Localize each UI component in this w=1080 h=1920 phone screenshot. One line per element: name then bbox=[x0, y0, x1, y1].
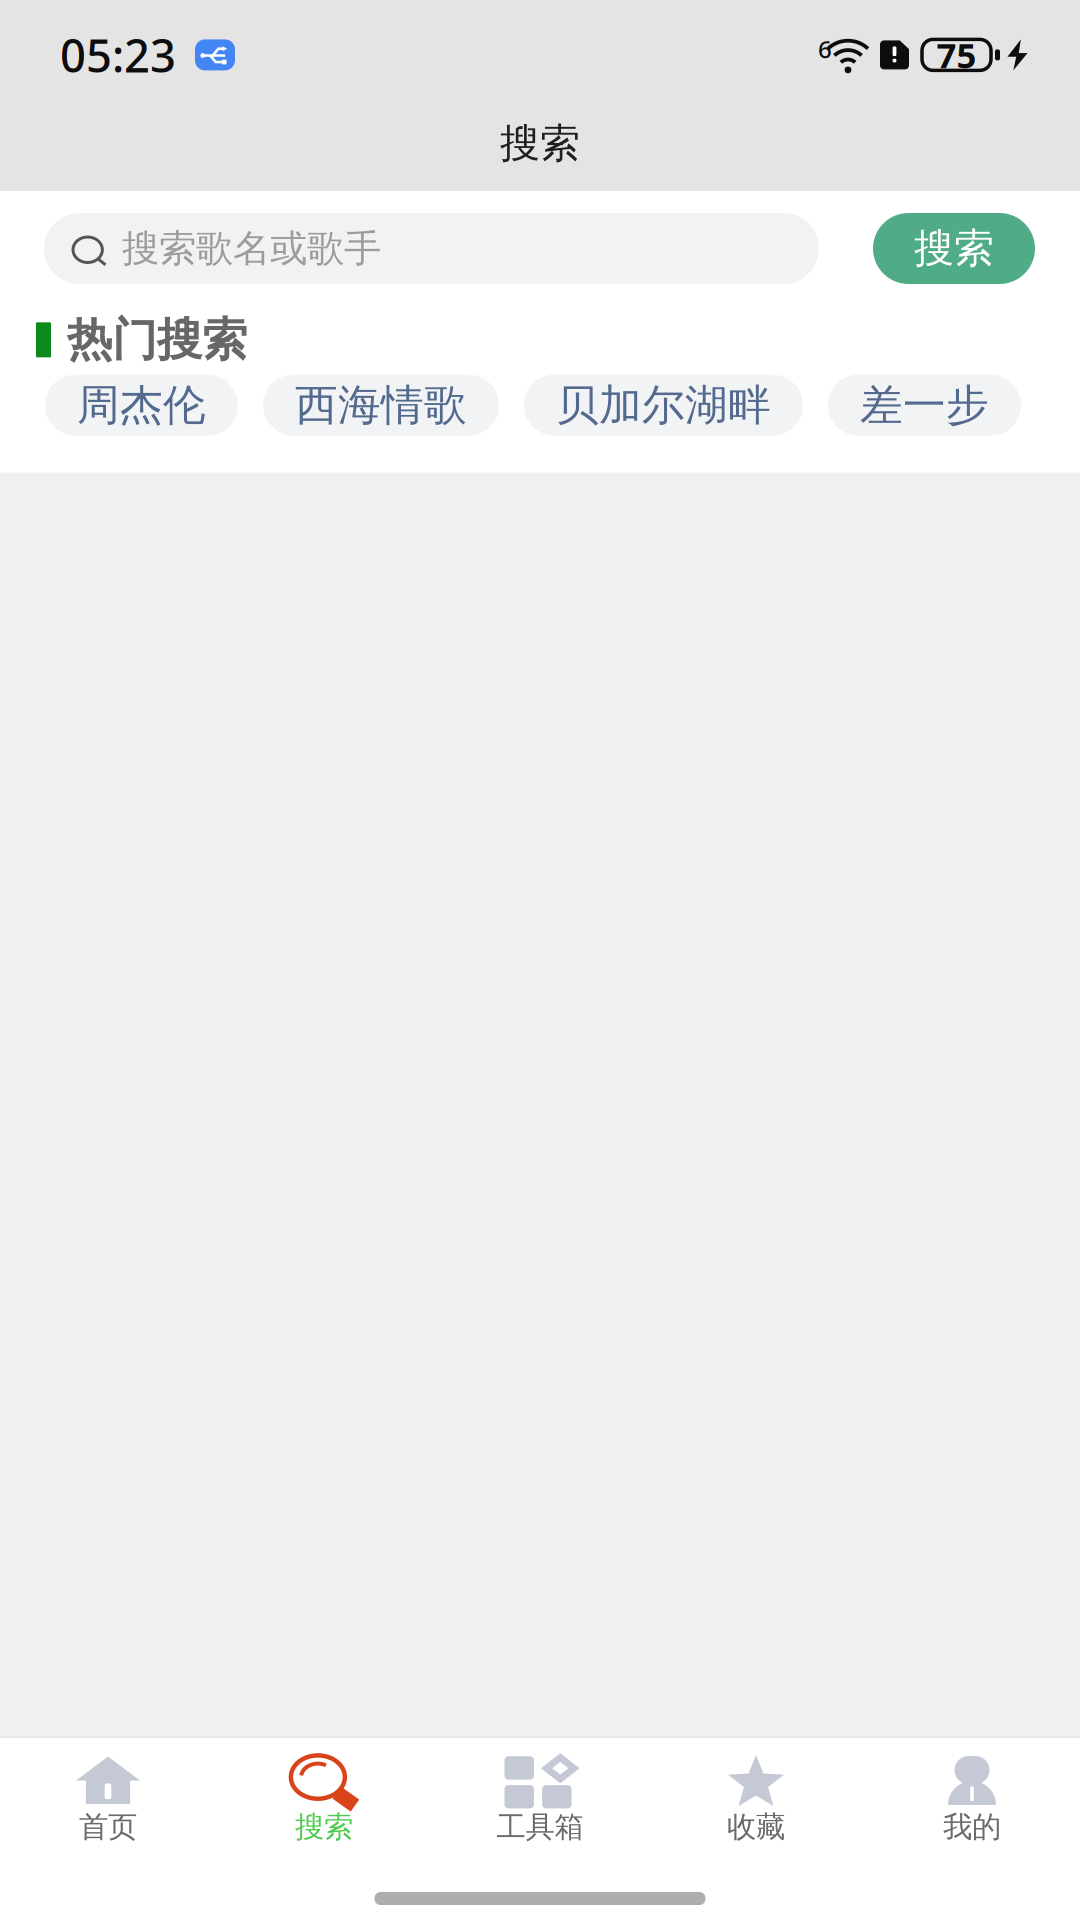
staticText: 6 bbox=[818, 33, 832, 65]
staticText: 75 bbox=[936, 32, 976, 78]
button[interactable]: 西海情歌 bbox=[263, 375, 499, 436]
button[interactable]: 收藏 bbox=[648, 1738, 864, 1855]
button[interactable]: 差一步 bbox=[828, 375, 1021, 436]
staticText: 我的 bbox=[943, 1809, 1001, 1845]
staticText: 05:23 bbox=[60, 25, 176, 85]
button[interactable]: 首页 bbox=[0, 1738, 216, 1855]
staticText: 搜索歌名或歌手 bbox=[122, 226, 381, 271]
button[interactable]: 工具箱 bbox=[432, 1738, 648, 1855]
staticText: 差一步 bbox=[860, 379, 989, 431]
staticText: 搜索 bbox=[914, 224, 994, 273]
staticText: 西海情歌 bbox=[295, 379, 467, 431]
button[interactable]: 贝加尔湖畔 bbox=[524, 375, 803, 436]
button[interactable]: 我的 bbox=[864, 1738, 1080, 1855]
staticText: 首页 bbox=[79, 1809, 137, 1845]
staticText: 热门搜索 bbox=[67, 312, 247, 368]
staticText: 贝加尔湖畔 bbox=[556, 379, 771, 431]
button[interactable]: 搜索 bbox=[216, 1738, 432, 1855]
staticText: 搜索 bbox=[500, 119, 580, 168]
staticText: 周杰伦 bbox=[77, 379, 206, 431]
staticText: 搜索 bbox=[295, 1809, 353, 1845]
button[interactable]: 搜索 bbox=[873, 213, 1035, 284]
staticText: 工具箱 bbox=[496, 1809, 583, 1845]
button[interactable]: 周杰伦 bbox=[45, 375, 238, 436]
staticText: 收藏 bbox=[727, 1809, 785, 1845]
